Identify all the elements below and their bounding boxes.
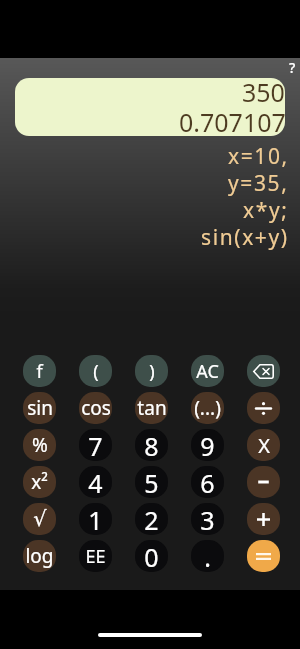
button[interactable]: x² xyxy=(23,466,56,498)
button[interactable]: 4 xyxy=(79,466,112,498)
button[interactable]: 7 xyxy=(79,429,112,461)
staticText: log xyxy=(25,543,54,569)
staticText: X xyxy=(258,432,270,459)
staticText: 6 xyxy=(200,466,215,498)
button[interactable]: % xyxy=(23,429,56,461)
staticText: 4 xyxy=(88,466,103,498)
button[interactable]: 1 xyxy=(79,503,112,535)
button[interactable]: sin xyxy=(23,392,56,424)
button[interactable]: 3 xyxy=(191,503,224,535)
button[interactable]: √ xyxy=(23,503,56,535)
button[interactable]: 6 xyxy=(191,466,224,498)
staticText: x*y; xyxy=(243,196,289,225)
staticText: 3 xyxy=(200,503,215,535)
staticText: y=35, xyxy=(228,169,289,198)
staticText: x=10, xyxy=(228,142,289,171)
button[interactable]: X xyxy=(247,429,280,461)
staticText: 9 xyxy=(200,429,215,461)
staticText: √ xyxy=(33,507,47,531)
button[interactable]: cos xyxy=(79,392,112,424)
staticText: EE xyxy=(85,544,106,569)
staticText: (...) xyxy=(194,395,221,421)
staticText: 0 xyxy=(144,540,159,572)
staticText: % xyxy=(32,432,48,458)
button[interactable]: Divide xyxy=(247,392,280,424)
button[interactable]: Minus xyxy=(247,466,280,498)
staticText: x² xyxy=(31,469,48,495)
button[interactable]: Backspace xyxy=(247,355,280,387)
staticText: 350 xyxy=(242,78,285,109)
staticText: f xyxy=(36,359,43,384)
button[interactable]: 5 xyxy=(135,466,168,498)
staticText: . xyxy=(204,540,211,572)
button[interactable]: f xyxy=(23,355,56,387)
button[interactable]: ( xyxy=(79,355,112,387)
button[interactable]: 8 xyxy=(135,429,168,461)
staticText: 8 xyxy=(144,429,159,461)
staticText: ? xyxy=(289,58,296,74)
staticText: cos xyxy=(81,395,111,421)
button[interactable]: ) xyxy=(135,355,168,387)
staticText: sin(x+y) xyxy=(201,223,289,252)
staticText: ) xyxy=(149,359,155,384)
staticText: sin xyxy=(27,395,53,421)
button[interactable]: 9 xyxy=(191,429,224,461)
button[interactable]: log xyxy=(23,540,56,572)
button[interactable]: . xyxy=(191,540,224,572)
button[interactable]: tan xyxy=(135,392,168,424)
button[interactable]: Help xyxy=(284,58,300,74)
button[interactable]: (...) xyxy=(191,392,224,424)
button[interactable]: 2 xyxy=(135,503,168,535)
staticText: AC xyxy=(196,359,219,384)
button[interactable]: AC xyxy=(191,355,224,387)
staticText: ( xyxy=(93,359,99,384)
button[interactable]: Plus xyxy=(247,503,280,535)
staticText: tan xyxy=(137,395,167,421)
button[interactable]: 0 xyxy=(135,540,168,572)
staticText: 0.707107 xyxy=(179,105,285,136)
button[interactable]: EE xyxy=(79,540,112,572)
staticText: 5 xyxy=(144,466,159,498)
staticText: 7 xyxy=(88,429,103,461)
staticText: 2 xyxy=(144,503,159,535)
button[interactable]: Equals xyxy=(247,540,280,572)
staticText: 1 xyxy=(88,503,103,535)
